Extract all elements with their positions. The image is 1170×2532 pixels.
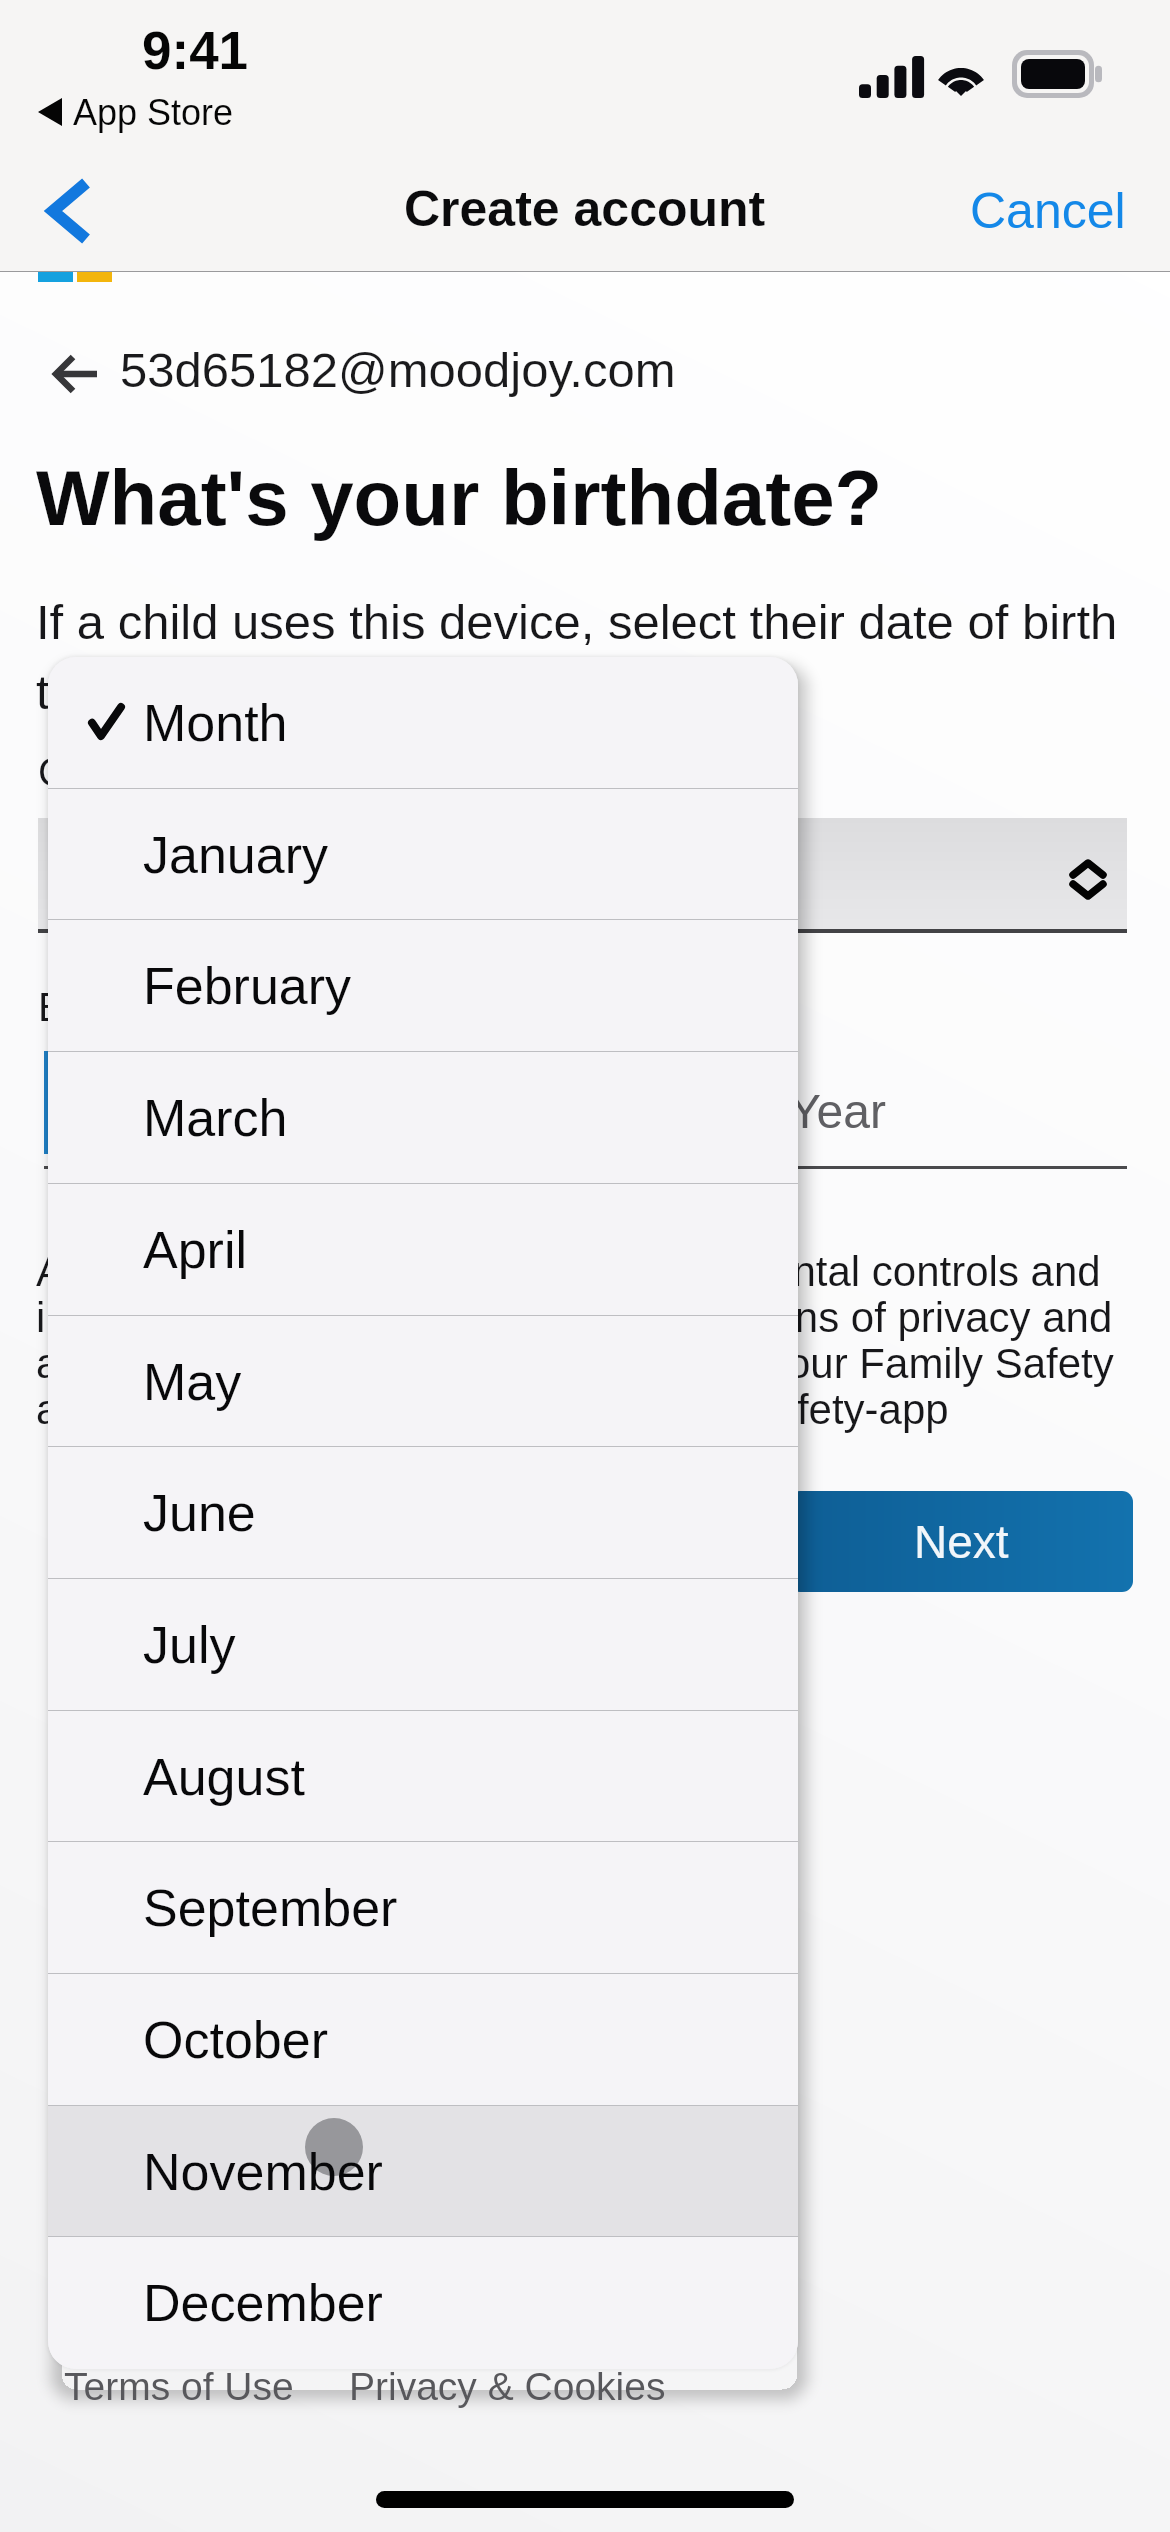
staticText: 9:41 bbox=[142, 21, 249, 80]
staticText: August bbox=[143, 1748, 305, 1806]
staticText: A child account gives you access to pare… bbox=[36, 1248, 1114, 1433]
staticText: Next bbox=[914, 1516, 1009, 1567]
button[interactable]: June bbox=[48, 1447, 798, 1579]
button[interactable]: Privacy & Cookies bbox=[339, 2352, 676, 2422]
staticText: March bbox=[143, 1089, 288, 1147]
button[interactable]: Terms of Use bbox=[54, 2352, 304, 2422]
button[interactable]: App Store bbox=[38, 92, 234, 132]
staticText: October bbox=[143, 2011, 328, 2069]
staticText: App Store bbox=[73, 92, 234, 132]
button[interactable]: 53d65182@moodjoy.com bbox=[36, 338, 700, 410]
staticText: Month bbox=[143, 694, 288, 752]
button[interactable]: December bbox=[48, 2237, 798, 2369]
button[interactable]: Year bbox=[620, 1051, 1127, 1169]
staticText: September bbox=[143, 1879, 398, 1937]
button[interactable]: April bbox=[48, 1184, 798, 1316]
staticText: Birthdate bbox=[38, 985, 199, 1030]
staticText: What's your birthdate? bbox=[36, 454, 883, 541]
button[interactable]: October bbox=[48, 1974, 798, 2106]
button[interactable]: Next bbox=[789, 1491, 1133, 1592]
staticText: May bbox=[143, 1353, 242, 1411]
staticText: December bbox=[143, 2274, 383, 2332]
staticText: June bbox=[143, 1484, 256, 1542]
staticText: Privacy & Cookies bbox=[349, 2365, 666, 2409]
button[interactable]: September bbox=[48, 1842, 798, 1974]
staticText: April bbox=[143, 1221, 248, 1279]
button[interactable]: July bbox=[48, 1579, 798, 1711]
staticText: Country/region bbox=[38, 750, 301, 795]
staticText: January bbox=[143, 826, 328, 884]
button[interactable]: August bbox=[48, 1711, 798, 1842]
staticText: Terms of Use bbox=[64, 2365, 294, 2409]
button[interactable]: Cancel bbox=[970, 150, 1126, 272]
button[interactable]: May bbox=[48, 1316, 798, 1447]
button[interactable]: Country or region bbox=[38, 818, 1127, 937]
button[interactable]: Back bbox=[10, 150, 128, 272]
staticText: Cancel bbox=[970, 183, 1126, 239]
staticText: Create account bbox=[404, 181, 766, 237]
button[interactable]: Birth month bbox=[44, 1051, 544, 1169]
staticText: February bbox=[143, 957, 352, 1015]
button[interactable]: January bbox=[48, 789, 798, 920]
staticText: July bbox=[143, 1616, 236, 1674]
staticText: 53d65182@moodjoy.com bbox=[120, 343, 676, 398]
staticText: If a child uses this device, select thei… bbox=[36, 595, 1118, 719]
staticText: November bbox=[143, 2143, 383, 2201]
button[interactable]: February bbox=[48, 920, 798, 1052]
button[interactable]: Month bbox=[48, 657, 798, 789]
button[interactable]: March bbox=[48, 1052, 798, 1184]
staticText: Year bbox=[789, 1085, 886, 1139]
button[interactable]: November bbox=[48, 2106, 798, 2237]
